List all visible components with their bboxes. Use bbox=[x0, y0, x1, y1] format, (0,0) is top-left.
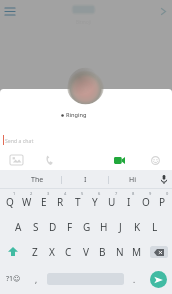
button[interactable]: I bbox=[62, 170, 108, 189]
button[interactable]: P bbox=[154, 189, 171, 214]
staticText: A bbox=[15, 220, 22, 234]
staticText: P bbox=[159, 195, 166, 209]
staticText: W bbox=[22, 195, 32, 209]
staticText: T bbox=[75, 195, 81, 209]
staticText: 5 bbox=[81, 191, 84, 196]
staticText: O bbox=[142, 195, 150, 209]
staticText: 2 bbox=[30, 191, 33, 196]
button[interactable]: Voice call bbox=[38, 149, 62, 170]
button[interactable]: S bbox=[27, 214, 44, 239]
staticText: X bbox=[49, 245, 55, 259]
button[interactable]: E bbox=[35, 189, 52, 214]
staticText: H bbox=[100, 220, 108, 234]
staticText: 6 bbox=[98, 191, 101, 196]
button[interactable]: X bbox=[43, 239, 60, 264]
staticText: . bbox=[133, 274, 136, 285]
staticText: J bbox=[119, 220, 122, 234]
staticText: 0 bbox=[166, 191, 169, 196]
button[interactable]: F bbox=[61, 214, 78, 239]
button[interactable]: W bbox=[18, 189, 35, 214]
staticText: ?1☺ bbox=[6, 274, 21, 284]
staticText: Send a chat bbox=[5, 137, 34, 144]
staticText: D bbox=[49, 220, 57, 234]
staticText: Y bbox=[92, 195, 98, 209]
button[interactable]: K bbox=[129, 214, 146, 239]
button[interactable]: U bbox=[103, 189, 120, 214]
staticText: V bbox=[83, 245, 89, 259]
staticText: 8 bbox=[132, 191, 135, 196]
staticText: L bbox=[152, 220, 158, 234]
staticText: 7 bbox=[115, 191, 118, 196]
button[interactable]: The bbox=[14, 170, 61, 189]
button[interactable]: Hi bbox=[109, 170, 155, 189]
staticText: 3 bbox=[47, 191, 50, 196]
button[interactable]: A bbox=[10, 214, 27, 239]
button[interactable]: Video call bbox=[108, 149, 131, 170]
button[interactable]: Menu bbox=[0, 1, 20, 21]
button[interactable]: Backspace bbox=[145, 239, 172, 264]
staticText: The bbox=[31, 175, 44, 185]
button[interactable]: C bbox=[60, 239, 77, 264]
button[interactable]: G bbox=[78, 214, 95, 239]
button[interactable]: I bbox=[120, 189, 137, 214]
button[interactable]: J bbox=[112, 214, 129, 239]
staticText: 4 bbox=[64, 191, 67, 196]
button[interactable]: Shift bbox=[0, 239, 26, 264]
button[interactable]: R bbox=[52, 189, 69, 214]
staticText: B bbox=[99, 245, 106, 259]
button[interactable]: Send bbox=[145, 264, 172, 294]
staticText: Z bbox=[32, 245, 38, 259]
button[interactable]: T bbox=[69, 189, 86, 214]
button[interactable]: . bbox=[124, 264, 145, 294]
staticText: N bbox=[116, 245, 124, 259]
button[interactable]: D bbox=[44, 214, 61, 239]
button[interactable]: O bbox=[137, 189, 154, 214]
staticText: 9 bbox=[149, 191, 152, 196]
button[interactable]: Next bbox=[154, 2, 172, 20]
staticText: 1 bbox=[13, 191, 16, 196]
staticText: G bbox=[83, 220, 91, 234]
button[interactable]: ?1☺ bbox=[0, 264, 26, 294]
button[interactable]: V bbox=[77, 239, 94, 264]
staticText: I bbox=[84, 175, 87, 185]
button[interactable]: H bbox=[95, 214, 112, 239]
staticText: F bbox=[67, 220, 73, 234]
button[interactable]: , bbox=[26, 264, 47, 294]
staticText: E bbox=[41, 195, 47, 209]
button[interactable]: Voice input bbox=[155, 170, 172, 189]
staticText: K bbox=[134, 220, 141, 234]
staticText: M bbox=[132, 245, 142, 259]
button[interactable]: M bbox=[128, 239, 145, 264]
staticText: S bbox=[33, 220, 39, 234]
staticText: U bbox=[108, 195, 116, 209]
button[interactable]: L bbox=[146, 214, 163, 239]
button[interactable]: Y bbox=[86, 189, 103, 214]
button[interactable]: N bbox=[111, 239, 128, 264]
button[interactable]: Q bbox=[1, 189, 18, 214]
staticText: R bbox=[57, 195, 64, 209]
staticText: C bbox=[65, 245, 72, 259]
button[interactable]: B bbox=[94, 239, 111, 264]
staticText: I bbox=[127, 195, 131, 209]
staticText: , bbox=[35, 274, 38, 285]
staticText: Q bbox=[6, 195, 14, 209]
button[interactable]: Camera roll bbox=[4, 149, 28, 170]
button[interactable]: Stickers bbox=[144, 149, 167, 170]
button[interactable]: Z bbox=[26, 239, 43, 264]
staticText: Ringing bbox=[66, 111, 87, 119]
staticText: Hi bbox=[129, 175, 136, 185]
